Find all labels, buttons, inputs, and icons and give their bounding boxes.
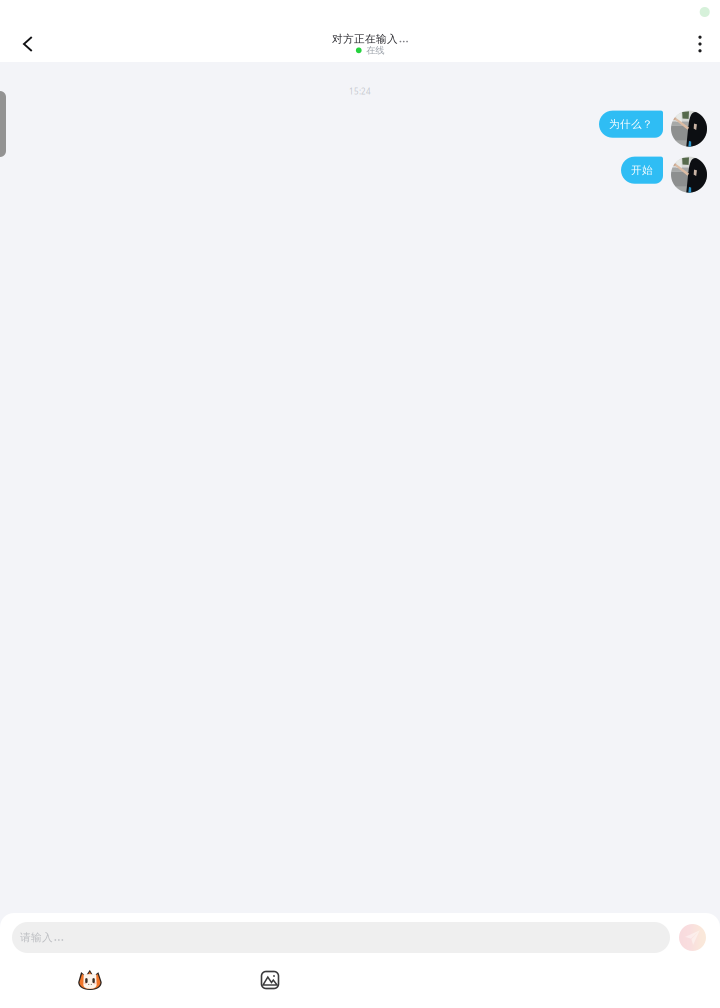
- staticText: 请输入: [20, 931, 53, 944]
- staticText: 开始: [631, 164, 653, 177]
- button[interactable]: Back: [4, 20, 52, 68]
- staticText: 为什么？: [609, 118, 653, 131]
- staticText: 对方正在输入: [332, 32, 398, 46]
- staticText: 15:24: [349, 86, 371, 97]
- button[interactable]: More options: [676, 20, 720, 68]
- button[interactable]: Stickers: [63, 960, 117, 1000]
- button[interactable]: Send: [679, 924, 706, 951]
- staticText: 在线: [366, 45, 384, 56]
- button[interactable]: Photos: [243, 960, 297, 1000]
